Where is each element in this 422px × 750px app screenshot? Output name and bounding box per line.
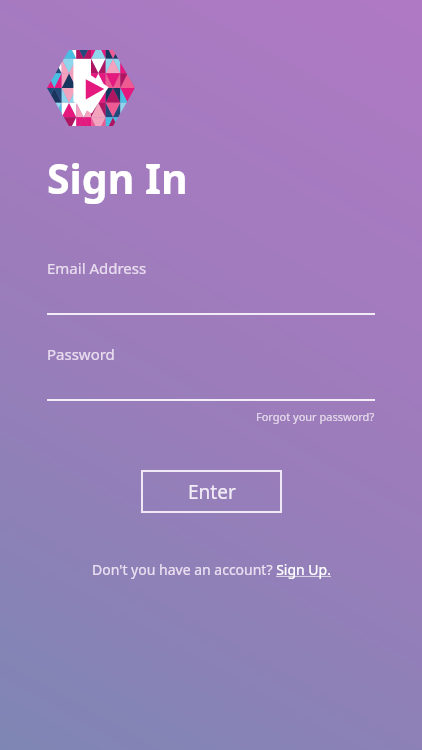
staticText: Password bbox=[47, 344, 115, 364]
button[interactable]: Forgot your password? bbox=[256, 409, 375, 424]
staticText: Forgot your password? bbox=[256, 409, 375, 424]
button[interactable]: Enter bbox=[141, 470, 282, 513]
staticText: Don't you have an account? Sign Up. bbox=[92, 560, 331, 579]
button[interactable]: Email Address bbox=[47, 258, 375, 315]
other: App logo bbox=[47, 44, 135, 132]
button[interactable]: Password bbox=[47, 344, 375, 401]
staticText: Email Address bbox=[47, 258, 147, 278]
button[interactable]: Don't you have an account? Sign Up. bbox=[92, 560, 331, 579]
staticText: Sign In bbox=[47, 150, 188, 206]
staticText: Enter bbox=[188, 479, 236, 505]
